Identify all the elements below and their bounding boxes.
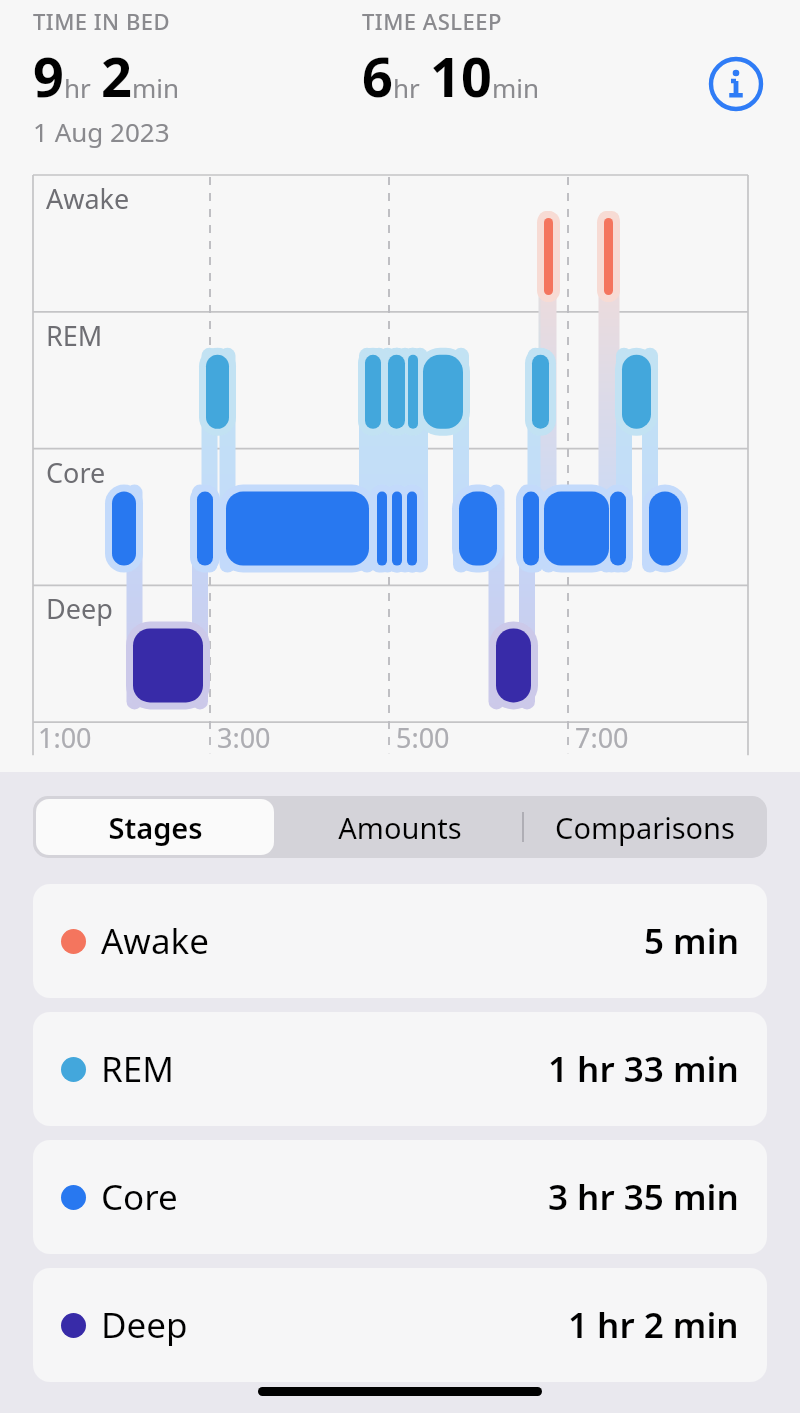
- button[interactable]: Comparisons: [522, 796, 767, 858]
- staticText: Awake: [46, 180, 130, 217]
- button[interactable]: REM: [33, 1012, 767, 1126]
- staticText: 10: [430, 39, 492, 113]
- staticText: min: [492, 70, 540, 105]
- staticText: hr: [64, 70, 91, 105]
- staticText: 9: [33, 39, 64, 113]
- staticText: REM: [46, 317, 103, 354]
- staticText: 7:00: [575, 719, 629, 756]
- staticText: Comparisons: [555, 808, 735, 847]
- staticText: 1 hr 2 min: [568, 1301, 739, 1349]
- button[interactable]: About sleep stages: [704, 52, 768, 116]
- staticText: min: [132, 70, 180, 105]
- staticText: Amounts: [338, 808, 462, 847]
- staticText: 1 hr 33 min: [548, 1045, 739, 1093]
- button[interactable]: Core: [33, 1140, 767, 1254]
- staticText: Deep: [46, 590, 113, 627]
- staticText: 1:00: [38, 719, 92, 756]
- staticText: 6: [362, 39, 393, 113]
- staticText: Core: [101, 1173, 178, 1221]
- staticText: 5 min: [644, 917, 739, 965]
- staticText: 5:00: [396, 719, 450, 756]
- staticText: Core: [46, 454, 106, 491]
- button[interactable]: Awake: [33, 884, 767, 998]
- staticText: REM: [101, 1045, 174, 1093]
- staticText: Awake: [101, 917, 209, 965]
- staticText: 3 hr 35 min: [548, 1173, 739, 1221]
- staticText: hr: [393, 70, 420, 105]
- button[interactable]: Stages: [36, 799, 274, 855]
- staticText: TIME ASLEEP: [362, 6, 503, 36]
- staticText: Deep: [101, 1301, 188, 1349]
- staticText: TIME IN BED: [33, 6, 171, 36]
- button[interactable]: Amounts: [277, 796, 522, 858]
- button[interactable]: Deep: [33, 1268, 767, 1382]
- staticText: 2: [101, 39, 132, 113]
- staticText: 1 Aug 2023: [33, 114, 170, 149]
- staticText: 3:00: [217, 719, 271, 756]
- staticText: Stages: [108, 808, 203, 847]
